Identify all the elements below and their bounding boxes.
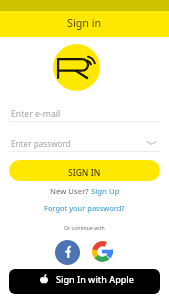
button[interactable]: Forgot your password? (44, 203, 125, 213)
staticText: Enter e-mail (11, 108, 61, 120)
staticText: Enter password (11, 138, 71, 149)
button[interactable]: Show password (144, 135, 158, 149)
button[interactable]: Sign In with Apple (9, 269, 160, 294)
staticText: SIGN IN (68, 167, 101, 179)
button[interactable]: Enter e-mail (0, 100, 169, 122)
button[interactable]: Continue with Facebook (55, 240, 80, 265)
staticText: Or continue with (64, 224, 105, 231)
staticText: Sign Up (91, 186, 120, 197)
staticText: Sign in (67, 15, 102, 30)
button[interactable]: Enter password (0, 130, 169, 152)
staticText: Sign In with Apple (56, 273, 134, 285)
button[interactable]: Continue with Google (91, 240, 114, 263)
button[interactable]: Sign Up (91, 186, 120, 197)
button[interactable]: SIGN IN (9, 160, 160, 181)
staticText: New User? (50, 186, 91, 197)
staticText: Forgot your password? (44, 203, 125, 213)
